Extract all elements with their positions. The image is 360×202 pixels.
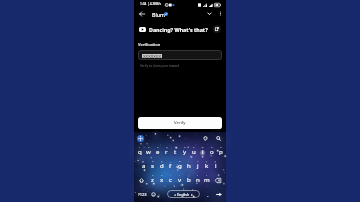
button[interactable]: _ xyxy=(166,159,175,173)
button[interactable]: * xyxy=(148,173,157,187)
staticText: ! xyxy=(197,173,198,176)
button[interactable]: 6 xyxy=(180,145,189,159)
button[interactable]: " xyxy=(157,173,166,187)
button[interactable]: $ xyxy=(157,159,166,173)
button[interactable]: XXXXXXX xyxy=(138,50,222,60)
button[interactable]: . xyxy=(203,187,213,202)
button[interactable]: 9 xyxy=(207,145,216,159)
button[interactable]: 1 xyxy=(135,145,144,159)
button[interactable]: ?123 xyxy=(135,187,150,202)
button[interactable]: Shift xyxy=(135,173,148,187)
button[interactable]: 0 xyxy=(216,145,225,159)
staticText: f xyxy=(169,161,172,169)
staticText: w xyxy=(146,147,151,155)
button[interactable]: More options xyxy=(215,8,226,19)
staticText: + xyxy=(197,159,199,162)
staticText: 2 xyxy=(148,145,150,148)
staticText: Dancing? What's that? xyxy=(149,26,208,33)
staticText: j xyxy=(197,161,199,169)
button[interactable]: - xyxy=(184,159,193,173)
staticText: s xyxy=(151,161,154,169)
staticText: t xyxy=(174,147,177,155)
staticText: 3 xyxy=(157,145,159,148)
staticText: ▸ xyxy=(191,193,193,197)
button[interactable]: ( xyxy=(202,159,211,173)
button[interactable]: & xyxy=(175,159,184,173)
button[interactable]: Emoji xyxy=(149,187,158,202)
staticText: z xyxy=(151,175,154,183)
button[interactable]: ; xyxy=(184,173,193,187)
staticText: ( xyxy=(206,159,207,162)
staticText: 1 xyxy=(139,145,141,148)
staticText: # xyxy=(152,159,154,162)
button[interactable]: Search xyxy=(214,134,223,143)
button[interactable]: ' xyxy=(166,173,175,187)
button[interactable]: ) xyxy=(211,159,220,173)
button[interactable]: # xyxy=(148,159,157,173)
staticText: e xyxy=(156,147,160,155)
button[interactable]: Open video xyxy=(213,25,221,33)
staticText: n xyxy=(196,175,200,183)
staticText: 9 xyxy=(211,145,213,148)
staticText: Verification xyxy=(138,42,161,48)
staticText: u xyxy=(192,147,196,155)
staticText: ; xyxy=(188,173,189,176)
button[interactable]: 4 xyxy=(162,145,171,159)
staticText: g xyxy=(178,161,182,169)
staticText: c xyxy=(169,175,172,183)
staticText: " xyxy=(161,173,162,176)
staticText: v xyxy=(178,175,182,183)
staticText: r xyxy=(165,147,168,155)
staticText: q xyxy=(138,147,142,155)
staticText: English xyxy=(177,192,190,197)
staticText: m xyxy=(204,175,210,183)
button[interactable]: ? xyxy=(202,173,211,187)
staticText: : xyxy=(179,173,180,176)
staticText: @ xyxy=(142,159,145,162)
staticText: b xyxy=(187,175,191,183)
staticText: 8 xyxy=(202,145,204,148)
staticText: l xyxy=(215,161,217,169)
button[interactable]: 8 xyxy=(198,145,207,159)
staticText: $ xyxy=(161,159,163,162)
staticText: 7 xyxy=(193,145,195,148)
staticText: ? xyxy=(206,173,208,176)
staticText: Blum xyxy=(152,11,165,18)
button[interactable]: Back xyxy=(136,8,147,19)
staticText: o xyxy=(210,147,214,155)
staticText: d xyxy=(160,161,164,169)
button[interactable]: + xyxy=(193,159,202,173)
staticText: x xyxy=(160,175,164,183)
button[interactable]: ! xyxy=(193,173,202,187)
staticText: 5 xyxy=(175,145,177,148)
button[interactable]: Collapse xyxy=(204,8,215,19)
staticText: 0 xyxy=(220,145,222,148)
staticText: 4 xyxy=(166,145,168,148)
button[interactable]: Themes xyxy=(201,134,210,143)
button[interactable]: Backspace xyxy=(211,173,225,187)
staticText: 6 xyxy=(184,145,186,148)
staticText: . xyxy=(207,191,209,199)
staticText: * xyxy=(152,173,154,176)
staticText: & xyxy=(179,159,181,162)
button[interactable]: : xyxy=(175,173,184,187)
staticText: ) xyxy=(215,159,216,162)
button[interactable]: 3 xyxy=(153,145,162,159)
button[interactable]: @ xyxy=(139,159,148,173)
button[interactable]: Keyboard settings xyxy=(137,135,144,142)
button[interactable]: 7 xyxy=(189,145,198,159)
button[interactable]: 2 xyxy=(144,145,153,159)
staticText: p xyxy=(219,147,223,155)
button[interactable]: ◂ xyxy=(167,190,200,198)
staticText: ◂ xyxy=(174,193,176,197)
staticText: 1:34 | 4.3KB/s xyxy=(140,2,162,6)
button[interactable]: Verify xyxy=(138,117,222,129)
button[interactable]: Enter xyxy=(213,187,225,202)
staticText: i xyxy=(202,147,204,155)
staticText: a xyxy=(142,161,146,169)
button[interactable]: 5 xyxy=(171,145,180,159)
staticText: Verify to claim your reward xyxy=(140,64,179,68)
staticText: k xyxy=(205,161,209,169)
staticText: ' xyxy=(170,173,171,176)
